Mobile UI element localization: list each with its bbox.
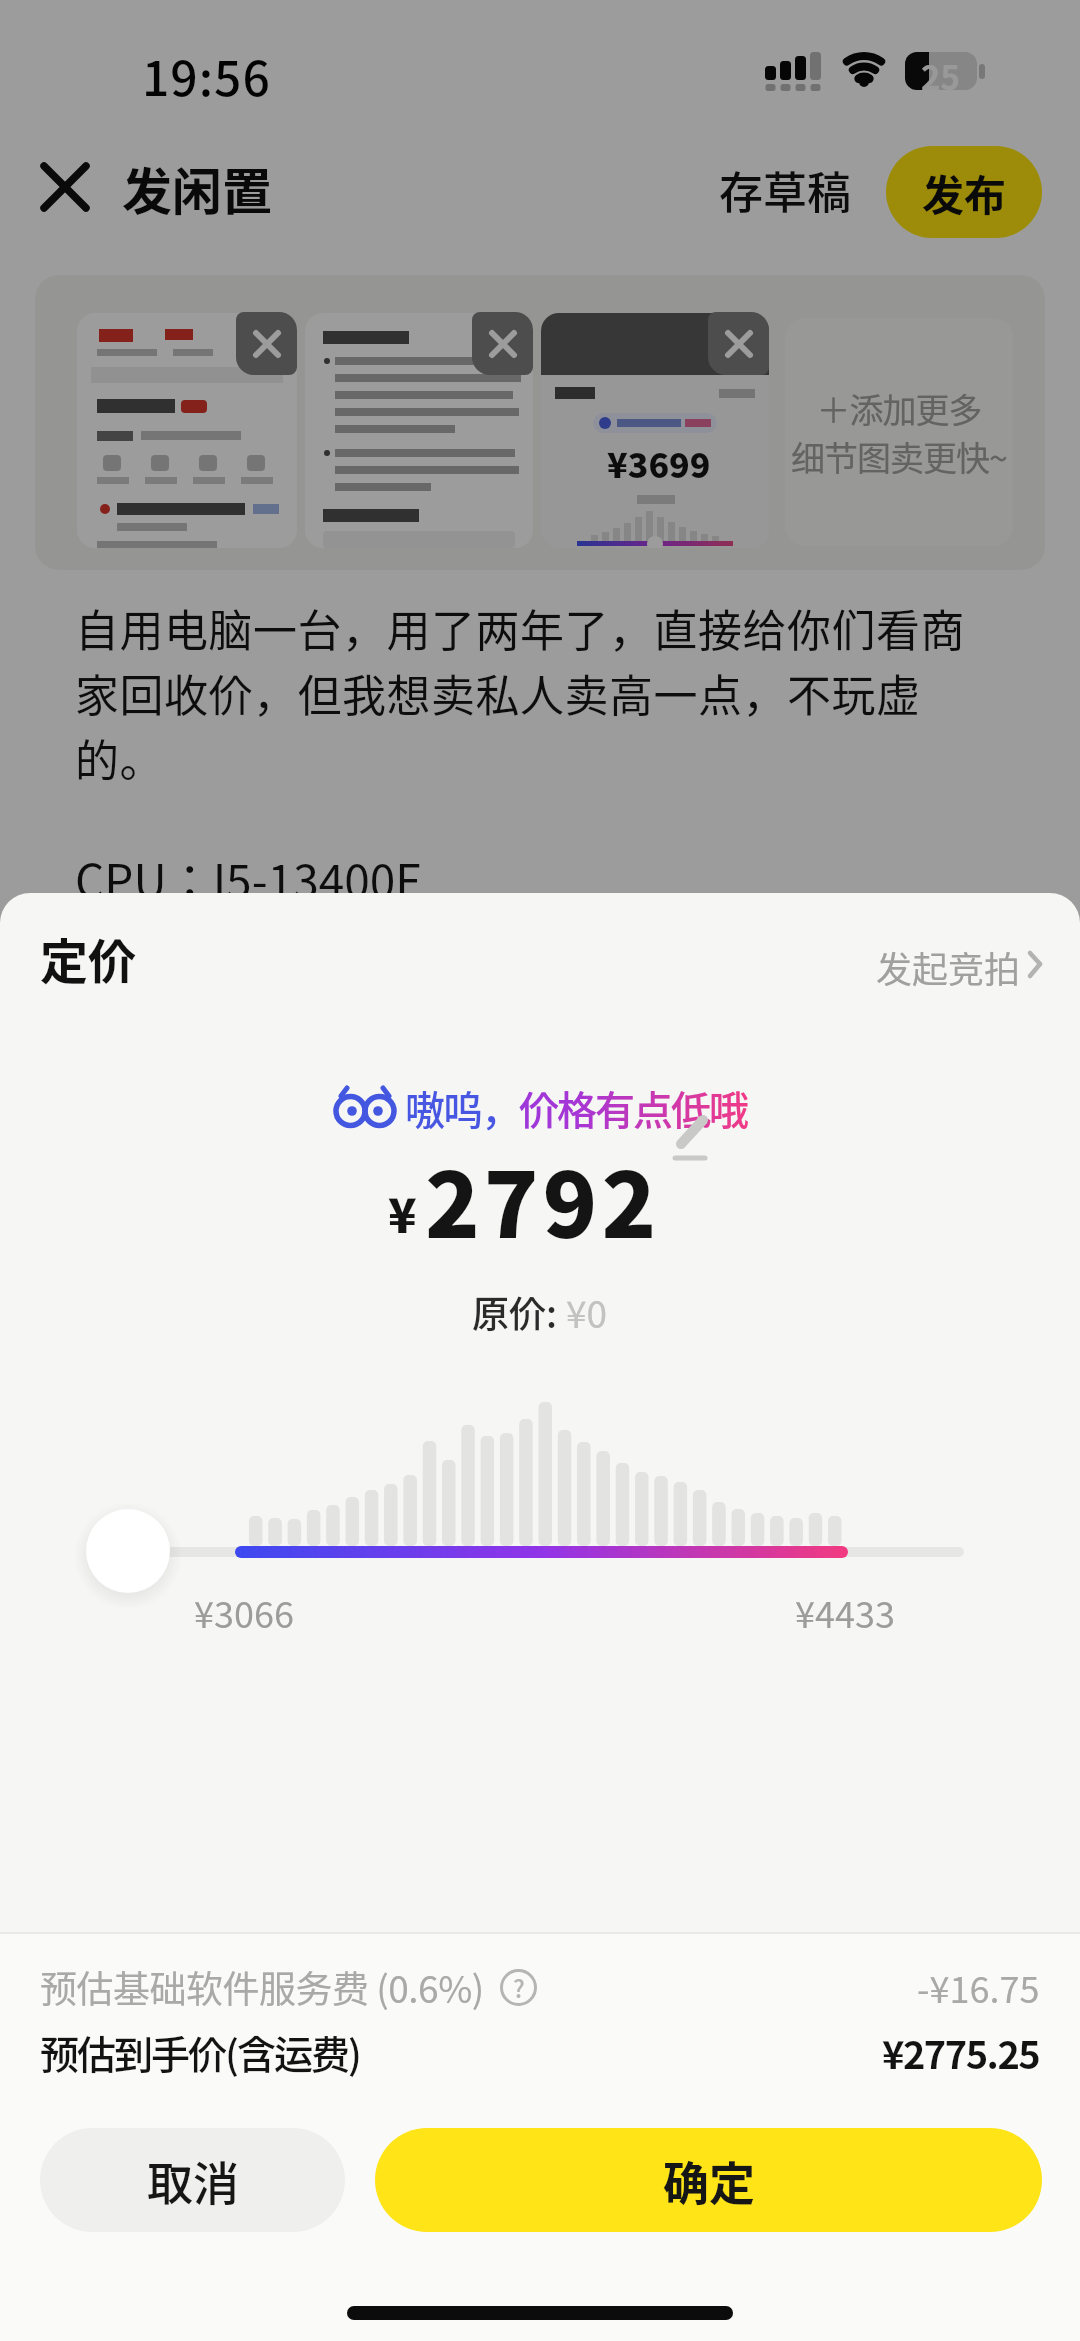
button[interactable]: 发起竞拍 — [872, 935, 1050, 991]
button[interactable] — [472, 312, 533, 375]
staticText: 取消 — [147, 2147, 239, 2214]
button[interactable]: 确定 — [375, 2128, 1042, 2232]
staticText: 嗷呜，价格有点低哦 — [405, 1079, 747, 1137]
staticText: 发闲置 — [122, 152, 272, 224]
staticText: 确定 — [663, 2147, 755, 2214]
staticText: 19:56 — [142, 40, 271, 110]
staticText: 原价: — [472, 1285, 566, 1339]
staticText: 预估基础软件服务费 (0.6%) — [40, 1960, 484, 2014]
staticText: 定价 — [40, 923, 137, 993]
staticText: 发起竞拍 — [876, 941, 1021, 993]
staticText: ¥3699 — [607, 439, 711, 488]
staticText: ＋添加更多 细节图卖更快~ — [791, 384, 1007, 480]
staticText: ¥0 — [566, 1285, 608, 1339]
staticText: 25 — [921, 52, 960, 90]
button[interactable]: ＋添加更多 细节图卖更快~ — [785, 318, 1013, 546]
staticText: ¥ — [388, 1178, 417, 1246]
staticText: 存草稿 — [719, 158, 851, 222]
button[interactable] — [34, 156, 96, 218]
staticText: ¥4433 — [795, 1586, 895, 1638]
staticText: 预估到手价(含运费) — [40, 2024, 360, 2080]
staticText: ¥3066 — [194, 1586, 294, 1638]
button[interactable]: ? — [500, 1969, 537, 2006]
staticText: ? — [513, 1970, 525, 2005]
staticText: CPU：I5-13400F — [75, 845, 421, 912]
button[interactable]: 取消 — [40, 2128, 345, 2232]
staticText: 2792 — [425, 1134, 661, 1264]
button[interactable]: 发布 — [886, 146, 1042, 238]
button[interactable] — [708, 312, 769, 375]
staticText: ¥2775.25 — [882, 2025, 1040, 2080]
staticText: -¥16.75 — [917, 1961, 1040, 2013]
button[interactable] — [236, 312, 297, 375]
button[interactable]: 存草稿 — [700, 150, 870, 230]
staticText: 自用电脑一台，用了两年了，直接给你们看商 家回收价，但我想卖私人卖高一点，不玩虚… — [75, 596, 965, 790]
staticText: 发布 — [922, 162, 1007, 223]
